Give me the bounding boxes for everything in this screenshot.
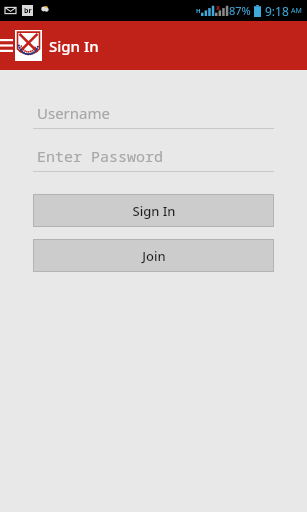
staticText: x [216,3,221,13]
staticText: Sign In [49,36,99,56]
button[interactable]: Open navigation menu [0,21,13,70]
staticText: H [196,7,201,15]
button[interactable]: Enter Password [33,146,274,172]
staticText: 87% [229,3,251,18]
staticText: Join [142,247,166,265]
button[interactable]: Username [33,103,274,129]
staticText: Sign In [132,202,176,220]
staticText: Username [37,103,110,123]
staticText: 9:18 [265,3,289,19]
staticText: br [24,6,32,16]
button[interactable]: Join [33,239,274,272]
staticText: AM [291,6,302,16]
button[interactable]: Sign In [33,194,274,227]
staticText: Enter Password [37,146,164,166]
